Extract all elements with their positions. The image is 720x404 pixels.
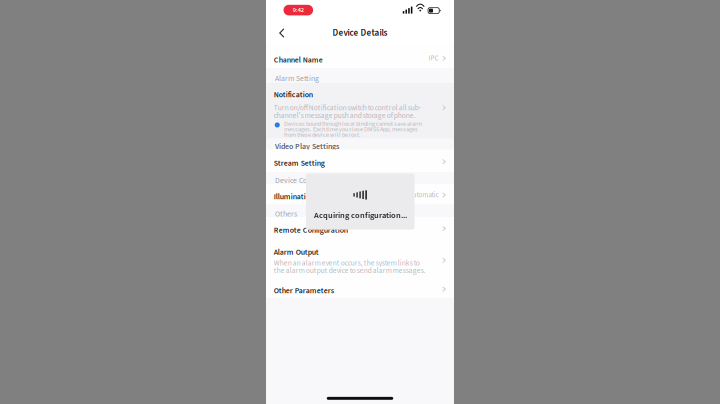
staticText: Other Parameters	[274, 285, 334, 296]
staticText: 9:42	[293, 5, 304, 15]
staticText: Automatic	[409, 190, 439, 200]
button[interactable]: Back	[272, 23, 292, 43]
staticText: Alarm Setting	[275, 73, 319, 84]
button[interactable]: Notification	[266, 83, 454, 138]
staticText: Turn on/off Notification switch to contr…	[274, 103, 421, 121]
staticText: Channel Name	[274, 54, 323, 66]
staticText: Device Control	[275, 175, 323, 186]
button[interactable]: Channel Name	[266, 44, 454, 68]
staticText: Device Details	[332, 26, 387, 39]
staticText: Devices bound through local binding cann…	[284, 119, 422, 139]
button[interactable]: Remote Configuration	[266, 217, 454, 240]
staticText: Remote Configuration	[274, 225, 348, 236]
staticText: Others	[275, 209, 297, 220]
button[interactable]: Other Parameters	[266, 279, 454, 298]
staticText: When an alarm event occurs, the system l…	[274, 258, 426, 276]
button[interactable]: Alarm Output	[266, 240, 454, 279]
staticText: Illumination	[274, 191, 314, 202]
staticText: Alarm Output	[274, 247, 319, 258]
button[interactable]: Illumination	[266, 184, 454, 204]
staticText: Acquiring configuration...	[314, 209, 407, 221]
staticText: IPC	[429, 53, 439, 63]
button[interactable]: Stream Setting	[266, 149, 454, 172]
staticText: Notification	[274, 89, 313, 100]
staticText: Video Play Settings	[275, 141, 339, 152]
staticText: Stream Setting	[274, 158, 325, 169]
